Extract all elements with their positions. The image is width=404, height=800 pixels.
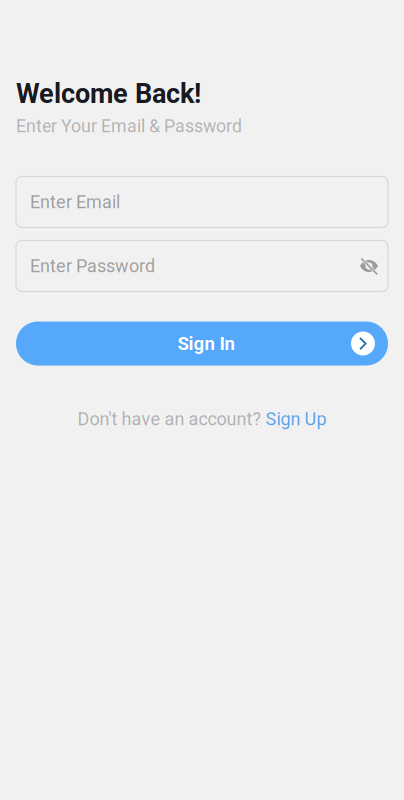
staticText: Sign Up	[265, 408, 326, 430]
staticText: Enter Your Email & Password	[16, 116, 242, 136]
staticText: Enter Email	[30, 191, 120, 213]
staticText: Sign In	[177, 333, 234, 354]
button[interactable]: Show password	[349, 242, 384, 290]
staticText: Don't have an account?	[77, 408, 265, 430]
button[interactable]: Sign Up	[265, 408, 326, 430]
staticText: Welcome Back!	[16, 78, 201, 110]
button[interactable]: Sign In	[16, 321, 388, 365]
button[interactable]: Enter Email	[16, 176, 388, 227]
button[interactable]: Enter Password	[16, 240, 388, 291]
staticText: Enter Password	[30, 255, 155, 277]
